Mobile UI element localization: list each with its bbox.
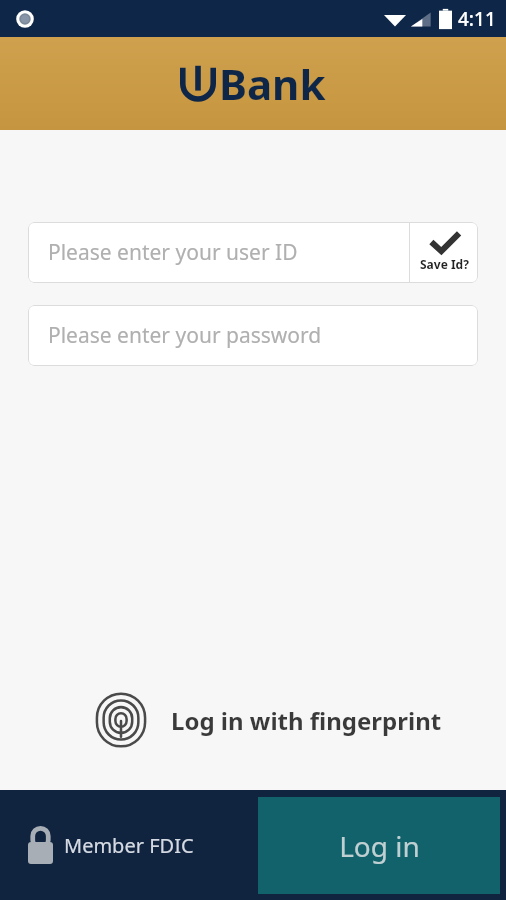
button[interactable]: Please enter your password [28, 305, 478, 366]
button[interactable]: Member FDIC [28, 826, 194, 864]
staticText: 4:11 [458, 6, 496, 32]
staticText: Please enter your user ID [48, 238, 298, 267]
staticText: Member FDIC [64, 832, 194, 859]
staticText: Bank [219, 55, 326, 112]
staticText: Log in with fingerprint [171, 704, 442, 737]
button[interactable]: Save Id [410, 222, 478, 283]
staticText: Log in [339, 827, 420, 865]
button[interactable]: Log in [258, 797, 500, 894]
button[interactable]: Please enter your user ID [28, 222, 478, 283]
staticText: Save Id? [420, 256, 469, 272]
staticText: Please enter your password [48, 321, 322, 350]
button[interactable]: Log in with fingerprint [93, 692, 442, 748]
